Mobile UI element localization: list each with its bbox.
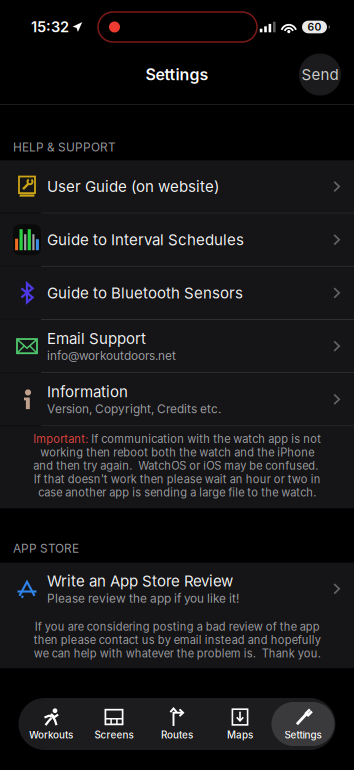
- staticText: User Guide (on website): [47, 177, 219, 196]
- staticText: 15:32: [31, 18, 69, 36]
- staticText: Screens: [94, 729, 133, 741]
- staticText: Please review the app if you like it!: [47, 591, 239, 605]
- button[interactable]: Guide to Bluetooth Sensors: [0, 267, 354, 319]
- staticText: Email Support: [47, 329, 146, 348]
- button[interactable]: Email Support: [0, 320, 354, 372]
- button[interactable]: Send: [299, 53, 341, 95]
- staticText: HELP & SUPPORT: [13, 140, 116, 154]
- button[interactable]: Maps: [208, 702, 271, 746]
- staticText: Guide to Interval Schedules: [47, 231, 244, 249]
- staticText: Version, Copyright, Credits etc.: [47, 402, 221, 416]
- button[interactable]: Write an App Store Review: [0, 563, 354, 615]
- button[interactable]: Screens: [82, 702, 145, 746]
- staticText: Information: [47, 383, 128, 401]
- staticText: Maps: [227, 729, 253, 741]
- staticText: 60: [307, 21, 321, 33]
- staticText: Guide to Bluetooth Sensors: [47, 284, 243, 302]
- staticText: Settings: [145, 65, 208, 84]
- button[interactable]: Settings: [271, 702, 334, 746]
- button[interactable]: Workouts: [19, 702, 82, 746]
- staticText: info@workoutdoors.net: [47, 349, 176, 363]
- staticText: Write an App Store Review: [47, 572, 233, 590]
- staticText: Workouts: [29, 729, 73, 741]
- staticText: If you are considering posting a bad rev…: [33, 620, 320, 660]
- button[interactable]: Guide to Interval Schedules: [0, 213, 354, 266]
- button[interactable]: Information: [0, 373, 354, 425]
- button[interactable]: Routes: [145, 702, 208, 746]
- staticText: Routes: [161, 729, 193, 741]
- staticText: Send: [301, 65, 338, 84]
- staticText: APP STORE: [13, 541, 79, 556]
- button[interactable]: User Guide (on website): [0, 160, 354, 213]
- staticText: Settings: [284, 729, 321, 741]
- staticText: Important: If communication with the wat…: [33, 432, 321, 499]
